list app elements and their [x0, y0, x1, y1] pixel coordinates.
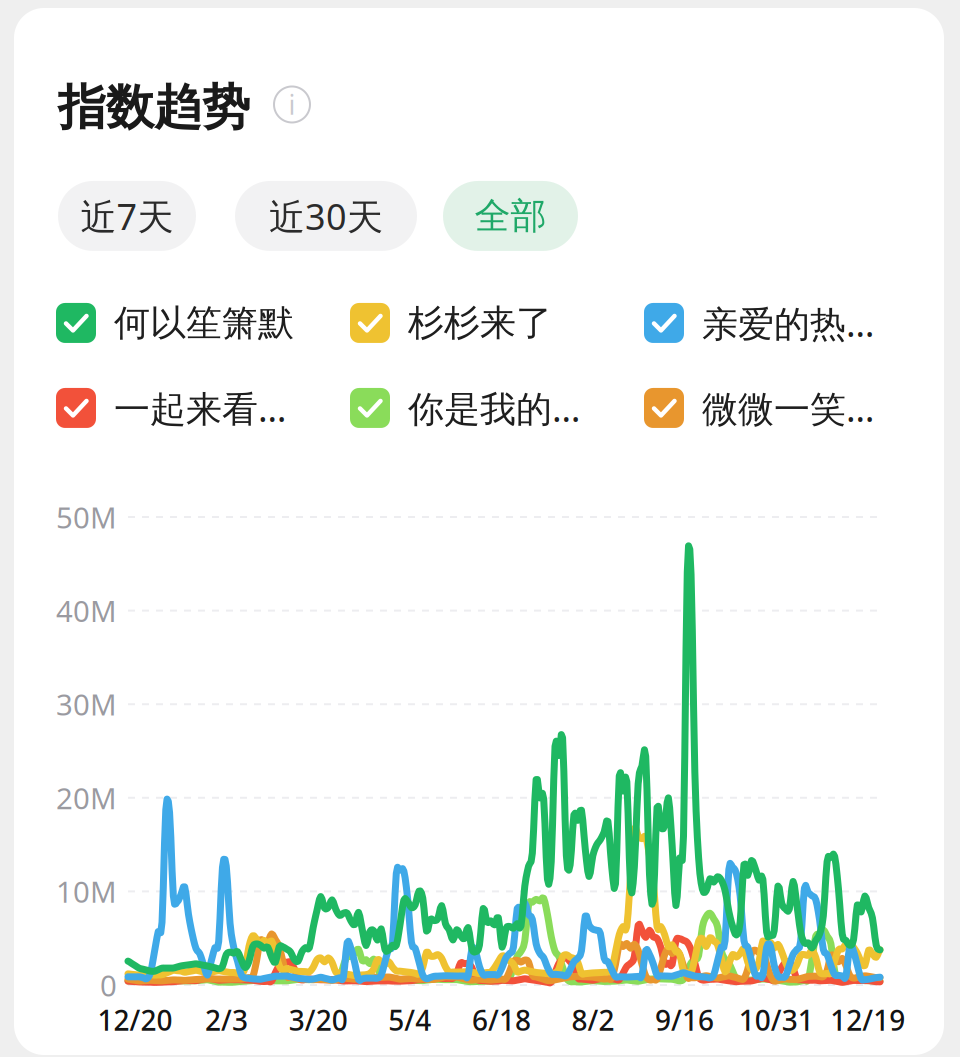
staticText: 5/4	[388, 1001, 431, 1039]
staticText: 近30天	[269, 192, 383, 240]
staticText: 10/31	[739, 1001, 814, 1039]
staticText: 30M	[56, 685, 117, 724]
staticText: 指数趋势	[58, 78, 250, 137]
button[interactable]: 何以笙箫默	[56, 300, 344, 346]
staticText: 微微一笑…	[702, 384, 874, 432]
staticText: 何以笙箫默	[114, 301, 294, 345]
staticText: 50M	[56, 497, 117, 536]
staticText: 3/20	[289, 1001, 348, 1039]
staticText: 12/19	[830, 1001, 905, 1039]
button[interactable]: 全部	[443, 181, 578, 251]
staticText: 近7天	[80, 192, 173, 240]
staticText: 杉杉来了	[408, 301, 552, 345]
staticText: 0	[100, 965, 117, 1004]
button[interactable]: 你是我的…	[350, 385, 638, 431]
button[interactable]: About index trend	[274, 86, 310, 122]
staticText: 你是我的…	[408, 384, 580, 432]
button[interactable]: 近30天	[235, 181, 417, 251]
staticText: 亲爱的热…	[702, 299, 874, 347]
staticText: 8/2	[571, 1001, 614, 1039]
staticText: 20M	[56, 778, 117, 817]
staticText: 一起来看…	[114, 384, 286, 432]
staticText: 9/16	[655, 1001, 714, 1039]
button[interactable]: 微微一笑…	[644, 385, 932, 431]
staticText: 2/3	[205, 1001, 248, 1039]
button[interactable]: 近7天	[58, 181, 196, 251]
staticText: 40M	[56, 591, 117, 630]
staticText: 10M	[56, 872, 117, 911]
staticText: i	[288, 87, 295, 122]
button[interactable]: 亲爱的热…	[644, 300, 932, 346]
staticText: 全部	[474, 194, 546, 238]
staticText: 6/18	[472, 1001, 531, 1039]
staticText: 12/20	[97, 1001, 172, 1039]
button[interactable]: 杉杉来了	[350, 300, 638, 346]
button[interactable]: 一起来看…	[56, 385, 344, 431]
